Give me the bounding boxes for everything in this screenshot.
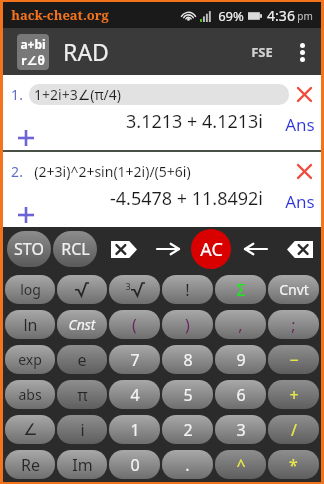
staticText: 9 bbox=[236, 349, 246, 371]
staticText: ; bbox=[291, 314, 296, 336]
button[interactable]: RAD bbox=[63, 36, 109, 67]
staticText: . bbox=[185, 454, 190, 476]
staticText: AC bbox=[200, 237, 223, 262]
staticText: ^ bbox=[236, 454, 246, 476]
button[interactable]: * bbox=[268, 450, 319, 479]
staticText: r∠θ bbox=[21, 52, 45, 68]
button[interactable]: + bbox=[268, 380, 319, 409]
button[interactable]: 2. bbox=[3, 152, 321, 227]
staticText: Cnvt bbox=[279, 280, 309, 299]
staticText: 2 bbox=[183, 419, 193, 441]
button[interactable]: Σ bbox=[215, 275, 266, 304]
button[interactable]: ; bbox=[268, 310, 319, 339]
staticText: ( bbox=[132, 314, 137, 336]
staticText: 6 bbox=[236, 384, 246, 406]
button[interactable]: 8 bbox=[162, 345, 213, 374]
button[interactable]: − bbox=[268, 345, 319, 374]
staticText: Σ bbox=[236, 279, 246, 301]
button[interactable]: 5 bbox=[162, 380, 213, 409]
button[interactable]: ) bbox=[162, 310, 213, 339]
button[interactable]: Delete entry 2 bbox=[289, 156, 319, 186]
staticText: (2+3i)^2+sin(1+2i)/(5+6i) bbox=[34, 162, 191, 181]
button[interactable]: log bbox=[5, 275, 55, 304]
button[interactable]: ! bbox=[162, 275, 213, 304]
staticText: Re bbox=[21, 454, 40, 476]
staticText: 3.1213 + 4.1213i bbox=[126, 109, 263, 134]
staticText: -4.5478 + 11.8492i bbox=[110, 186, 263, 211]
button[interactable]: i bbox=[57, 415, 107, 444]
staticText: 0 bbox=[130, 454, 140, 476]
staticText: RCL bbox=[61, 238, 90, 260]
staticText: 1+2i+3∠(π/4) bbox=[34, 85, 121, 104]
button[interactable]: exp bbox=[5, 345, 55, 374]
button[interactable]: abs bbox=[5, 380, 55, 409]
staticText: 3 bbox=[125, 280, 131, 292]
button[interactable]: Cnvt bbox=[268, 275, 319, 304]
button[interactable]: . bbox=[162, 450, 213, 479]
staticText: Ans bbox=[285, 113, 315, 136]
button[interactable]: e bbox=[57, 345, 107, 374]
staticText: * bbox=[289, 454, 298, 476]
button[interactable]: 3 bbox=[109, 275, 160, 304]
button[interactable]: Cnst bbox=[57, 310, 107, 339]
staticText: pm bbox=[297, 9, 313, 23]
staticText: ln bbox=[23, 314, 38, 336]
button[interactable]: 3 bbox=[215, 415, 266, 444]
button[interactable]: ∠ bbox=[5, 415, 55, 444]
staticText: 7 bbox=[130, 349, 140, 371]
button[interactable]: STO bbox=[7, 231, 51, 267]
button[interactable]: 1. bbox=[3, 75, 321, 150]
staticText: + bbox=[289, 384, 299, 406]
staticText: 4:36 bbox=[267, 6, 295, 25]
staticText: 1. bbox=[11, 85, 23, 104]
staticText: i bbox=[80, 419, 85, 441]
button[interactable]: Add entry bbox=[15, 127, 37, 149]
button[interactable]: Delete entry 1 bbox=[289, 79, 319, 109]
button[interactable]: Ans bbox=[285, 190, 315, 213]
staticText: 69% bbox=[218, 7, 244, 25]
button[interactable]: Move cursor right bbox=[149, 230, 187, 268]
staticText: ∠ bbox=[23, 420, 38, 439]
button[interactable]: ^ bbox=[215, 450, 266, 479]
staticText: 3 bbox=[236, 419, 246, 441]
staticText: 5 bbox=[183, 384, 193, 406]
button[interactable]: π bbox=[57, 380, 107, 409]
staticText: − bbox=[289, 349, 299, 371]
button[interactable]: / bbox=[268, 415, 319, 444]
button[interactable]: 7 bbox=[109, 345, 160, 374]
button[interactable]: , bbox=[215, 310, 266, 339]
button[interactable]: Im bbox=[57, 450, 107, 479]
button[interactable] bbox=[57, 275, 107, 304]
button[interactable]: FSE bbox=[245, 43, 279, 61]
button[interactable]: 6 bbox=[215, 380, 266, 409]
staticText: Ans bbox=[285, 190, 315, 213]
staticText: 4 bbox=[130, 384, 140, 406]
button[interactable]: Add entry bbox=[15, 204, 37, 226]
button[interactable]: RCL bbox=[53, 231, 97, 267]
button[interactable]: ( bbox=[109, 310, 160, 339]
staticText: / bbox=[291, 419, 297, 441]
staticText: ! bbox=[185, 279, 190, 301]
button[interactable]: Ans bbox=[285, 113, 315, 136]
button[interactable]: Clear entry bbox=[105, 230, 143, 268]
staticText: a+bi bbox=[20, 36, 46, 52]
button[interactable]: ln bbox=[5, 310, 55, 339]
button[interactable]: Re bbox=[5, 450, 55, 479]
button[interactable]: 2 bbox=[162, 415, 213, 444]
button[interactable]: More options bbox=[289, 32, 315, 72]
staticText: FSE bbox=[251, 43, 273, 61]
button[interactable]: 0 bbox=[109, 450, 160, 479]
staticText: STO bbox=[14, 238, 44, 260]
button[interactable]: Backspace bbox=[281, 230, 319, 268]
button[interactable]: 1 bbox=[109, 415, 160, 444]
staticText: Im bbox=[72, 454, 93, 476]
button[interactable]: 9 bbox=[215, 345, 266, 374]
staticText: π bbox=[77, 384, 88, 406]
button[interactable]: Complex format a+bi or polar bbox=[17, 34, 49, 70]
staticText: 1 bbox=[130, 419, 140, 441]
button[interactable]: 4 bbox=[109, 380, 160, 409]
button[interactable]: AC bbox=[191, 229, 231, 269]
staticText: 8 bbox=[183, 349, 193, 371]
staticText: RAD bbox=[63, 36, 109, 67]
button[interactable]: Move cursor left bbox=[237, 230, 275, 268]
